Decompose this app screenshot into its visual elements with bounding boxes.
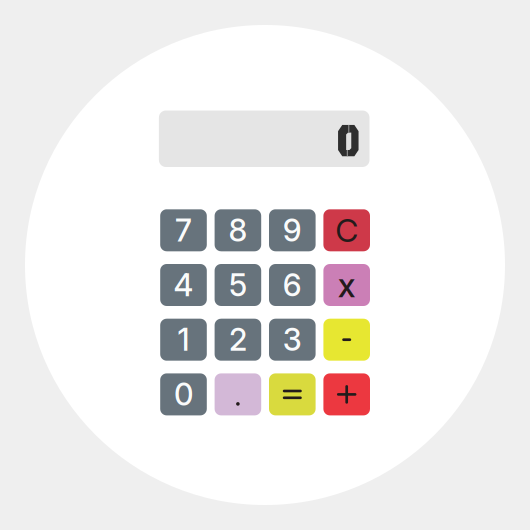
staticText: C bbox=[335, 211, 358, 250]
staticText: 3 bbox=[283, 321, 302, 358]
button[interactable]: Clear bbox=[323, 209, 370, 251]
button[interactable]: 8 bbox=[215, 209, 261, 251]
button[interactable]: 3 bbox=[269, 319, 316, 361]
staticText: x bbox=[338, 265, 356, 305]
button[interactable]: Equals bbox=[269, 373, 316, 415]
staticText: 4 bbox=[173, 266, 193, 303]
button[interactable]: Plus bbox=[323, 373, 370, 415]
button[interactable]: 0 bbox=[160, 373, 207, 415]
staticText: 9 bbox=[283, 212, 302, 249]
staticText: 6 bbox=[283, 266, 302, 303]
button[interactable]: Decimal point bbox=[215, 373, 261, 415]
staticText: 8 bbox=[228, 212, 247, 249]
button[interactable]: Multiply bbox=[323, 264, 370, 306]
button[interactable]: 6 bbox=[269, 264, 316, 306]
button[interactable]: 1 bbox=[160, 319, 207, 361]
button[interactable]: 7 bbox=[160, 209, 207, 251]
staticText: 5 bbox=[229, 266, 247, 303]
staticText: 1 bbox=[177, 321, 189, 358]
button[interactable]: Minus bbox=[323, 319, 370, 361]
button[interactable]: 5 bbox=[215, 264, 261, 306]
button[interactable]: 2 bbox=[215, 319, 261, 361]
staticText: 0 bbox=[174, 376, 193, 413]
staticText: 7 bbox=[175, 212, 192, 249]
staticText: 2 bbox=[229, 321, 247, 358]
button[interactable]: 9 bbox=[269, 209, 316, 251]
button[interactable]: 4 bbox=[160, 264, 207, 306]
